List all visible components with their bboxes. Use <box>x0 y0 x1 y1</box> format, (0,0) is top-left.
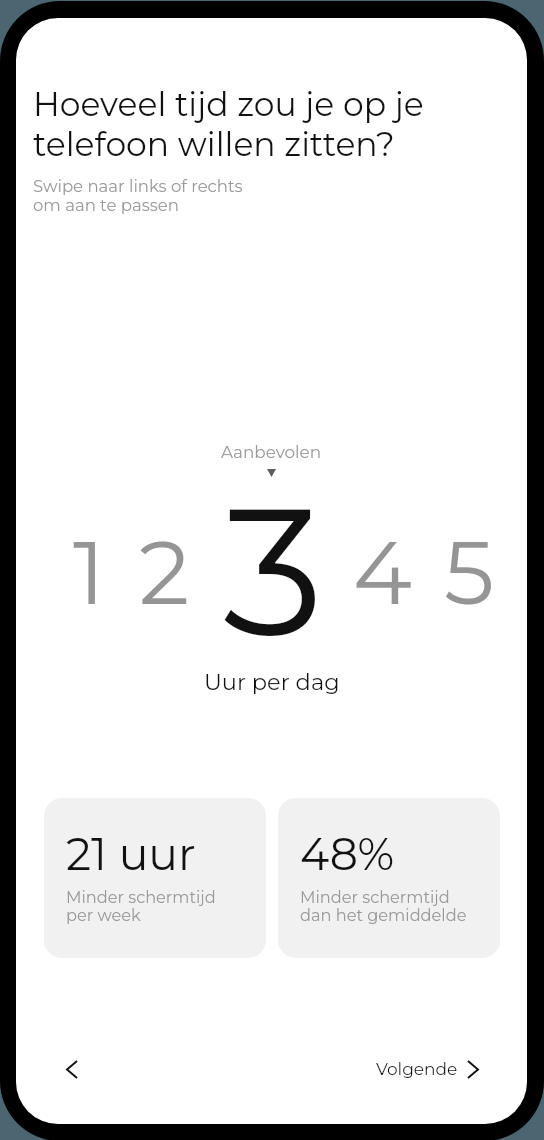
staticText: 1 <box>73 518 106 626</box>
staticText: 5 <box>444 518 495 626</box>
staticText: 4 <box>353 518 412 626</box>
staticText: 48% <box>300 827 395 881</box>
staticText: Minder schermtijd per week <box>66 887 216 925</box>
staticText: 2 <box>139 518 190 626</box>
button[interactable]: Vorige <box>50 1047 94 1091</box>
button[interactable]: 5 <box>444 518 495 626</box>
button[interactable]: Volgende <box>366 1047 488 1091</box>
staticText: Aanbevolen <box>221 442 322 462</box>
button[interactable]: 21 uur <box>44 798 266 958</box>
button[interactable]: 2 <box>139 518 190 626</box>
staticText: Uur per dag <box>204 668 340 695</box>
button[interactable]: 48% <box>278 798 500 958</box>
staticText: Swipe naar links of rechts om aan te pas… <box>33 176 243 215</box>
staticText: 3 <box>223 462 324 680</box>
staticText: Volgende <box>376 1059 458 1080</box>
staticText: Minder schermtijd dan het gemiddelde <box>300 887 467 925</box>
button[interactable]: 1 <box>73 518 106 626</box>
button[interactable]: 4 <box>353 518 412 626</box>
staticText: 21 uur <box>66 827 196 881</box>
staticText: Hoeveel tijd zou je op je telefoon wille… <box>33 84 424 164</box>
